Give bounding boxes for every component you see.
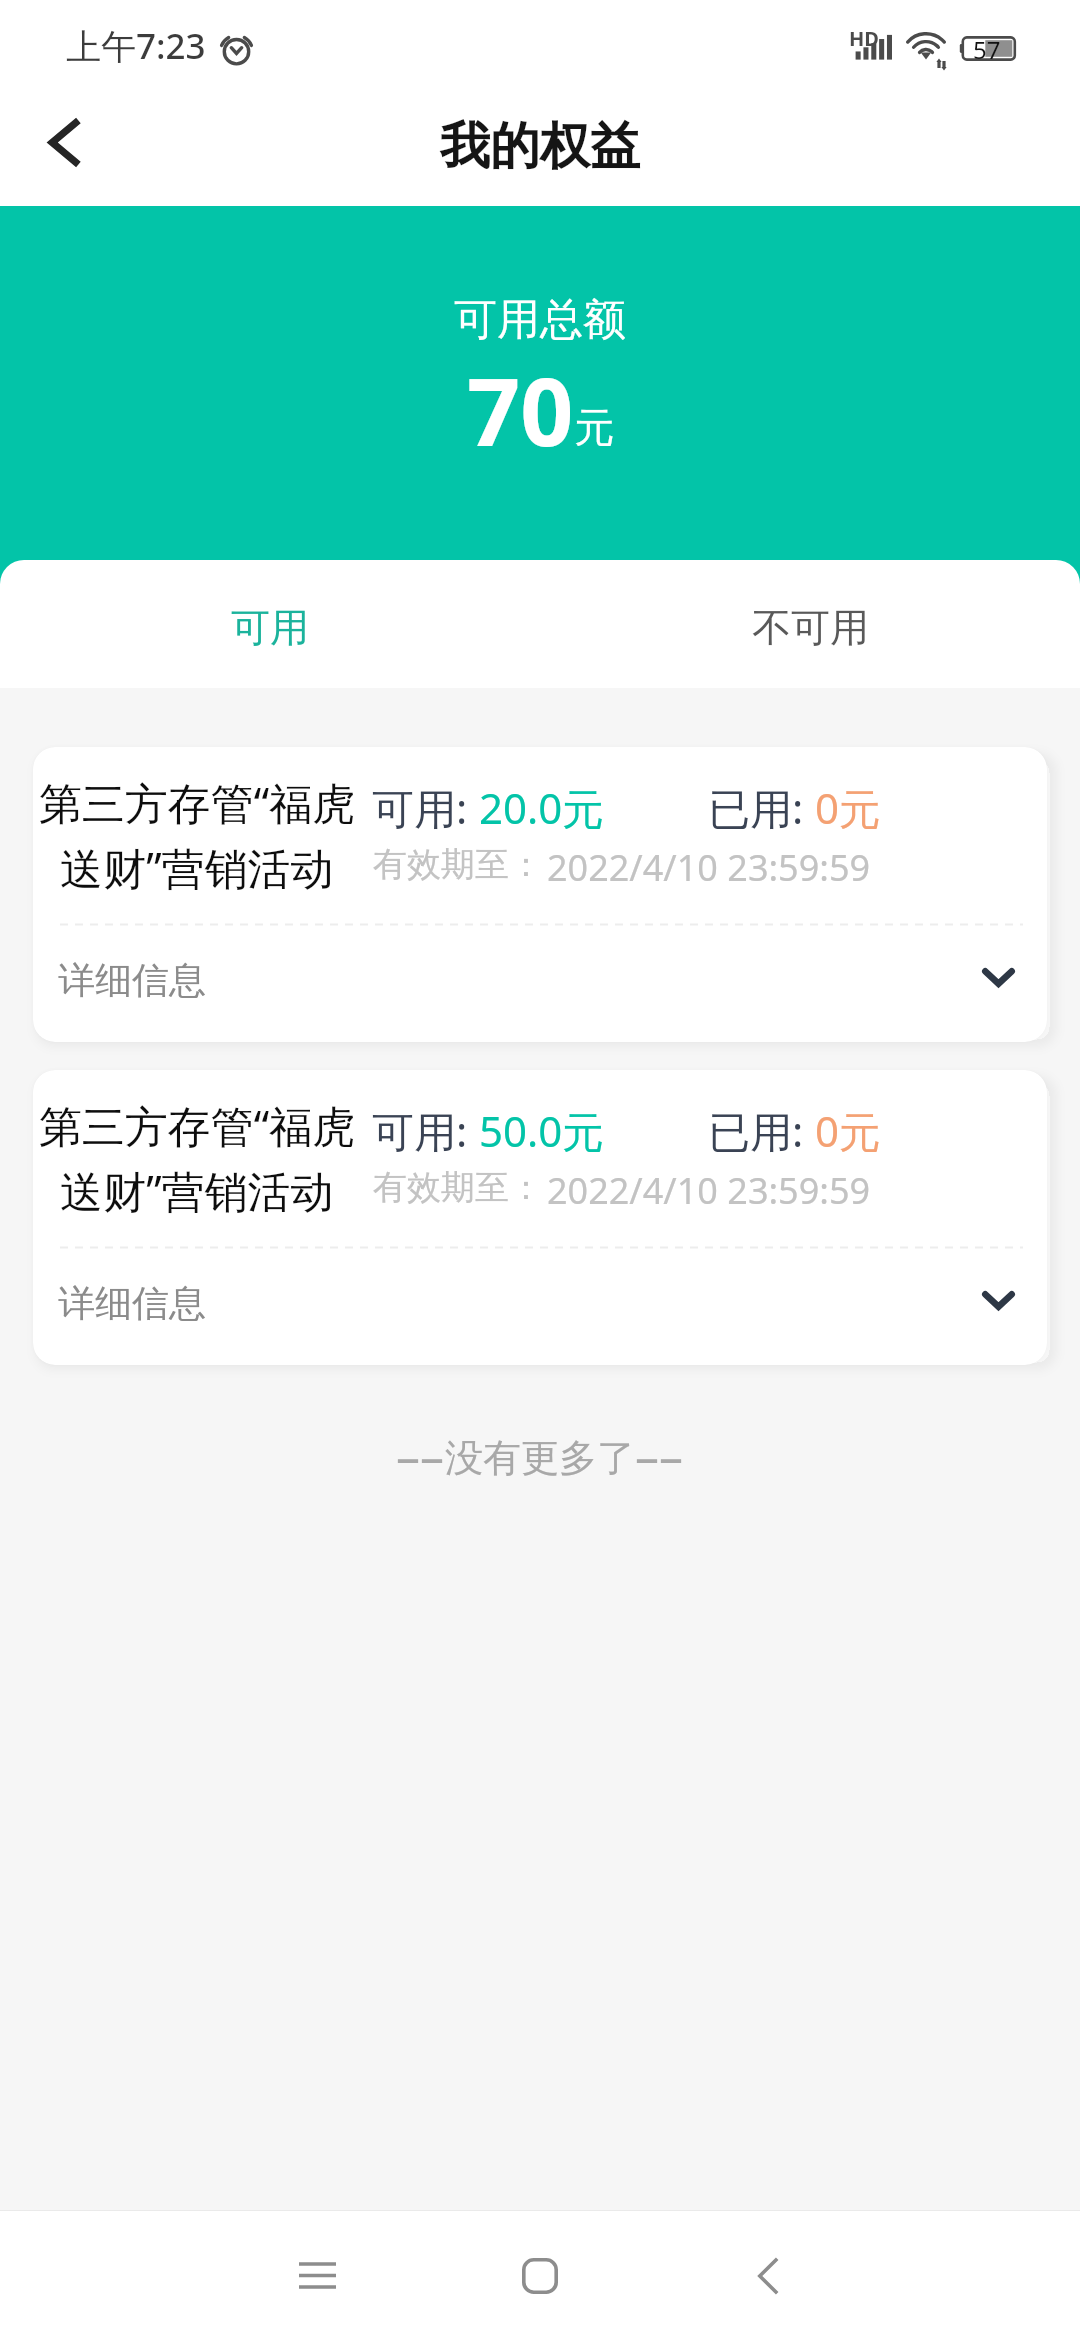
staticText: 70 xyxy=(467,347,574,474)
staticText: 可用总额 xyxy=(454,293,626,347)
staticText: 57 xyxy=(973,33,1001,66)
button[interactable]: 可用 xyxy=(0,560,540,688)
staticText: 已用: xyxy=(708,779,815,836)
staticText: –– xyxy=(396,1423,445,1488)
button[interactable]: Back xyxy=(697,2211,839,2340)
button[interactable]: 第三方存管“福虎送财”营销活动 xyxy=(33,1070,1047,1365)
staticText: 2022/4/10 23:59:59 xyxy=(547,1166,871,1215)
staticText: 没有更多了 xyxy=(445,1434,635,1482)
staticText: 有效期至： xyxy=(373,1166,543,1209)
staticText: HD xyxy=(849,25,879,52)
button[interactable]: 第三方存管“福虎送财”营销活动 xyxy=(33,747,1047,1042)
staticText: 50.0元 xyxy=(479,1102,605,1159)
button[interactable]: Home xyxy=(469,2211,611,2340)
staticText: 可用 xyxy=(231,603,309,652)
staticText: 0元 xyxy=(815,779,882,836)
staticText: 我的权益 xyxy=(440,115,640,178)
staticText: 第三方存管“福虎送财”营销活动 xyxy=(37,1096,357,1219)
staticText: 有效期至： xyxy=(373,843,543,886)
staticText: 0元 xyxy=(815,1102,882,1159)
staticText: 详细信息 xyxy=(58,957,206,1004)
staticText: 可用: xyxy=(372,779,479,836)
staticText: 元 xyxy=(574,402,614,452)
staticText: 上午7:23 xyxy=(66,22,206,70)
staticText: 第三方存管“福虎送财”营销活动 xyxy=(37,773,357,896)
staticText: 可用: xyxy=(372,1102,479,1159)
staticText: 已用: xyxy=(708,1102,815,1159)
button[interactable]: 不可用 xyxy=(540,560,1080,688)
staticText: 2022/4/10 23:59:59 xyxy=(547,843,871,892)
button[interactable]: Recent apps xyxy=(246,2211,388,2340)
staticText: 不可用 xyxy=(752,603,869,652)
button[interactable]: Back xyxy=(0,92,118,206)
staticText: 详细信息 xyxy=(58,1280,206,1327)
staticText: 20.0元 xyxy=(479,779,605,836)
staticText: –– xyxy=(635,1423,684,1488)
